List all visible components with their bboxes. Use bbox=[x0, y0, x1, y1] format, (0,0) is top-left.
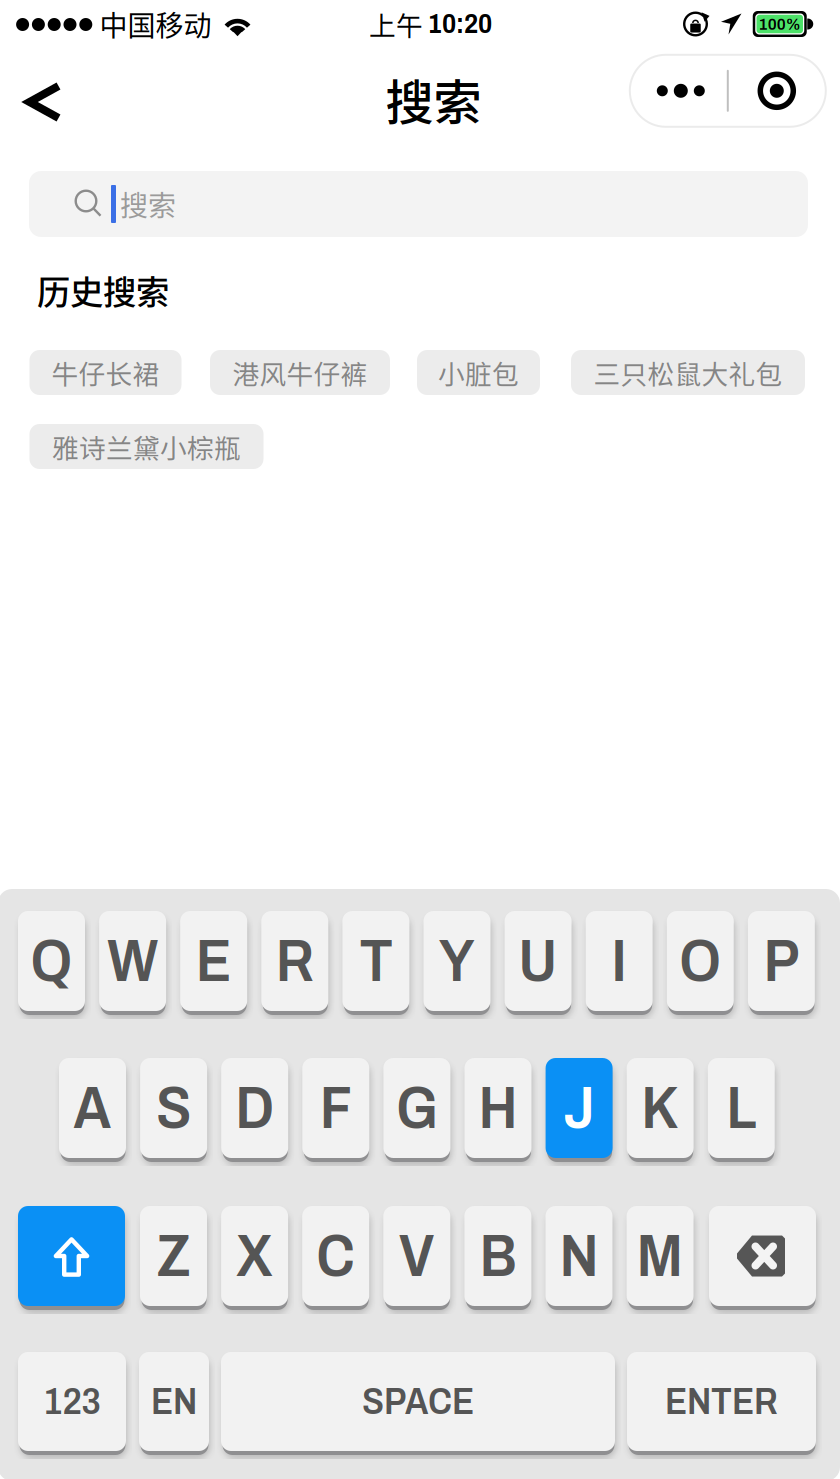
button[interactable]: A bbox=[55, 1052, 130, 1164]
staticText: G bbox=[396, 1075, 438, 1141]
staticText: T bbox=[359, 928, 392, 994]
button[interactable]: 123 bbox=[14, 1346, 130, 1457]
button[interactable]: H bbox=[460, 1052, 535, 1164]
button[interactable]: T bbox=[338, 905, 413, 1017]
button[interactable]: D bbox=[217, 1052, 292, 1164]
staticText: 123 bbox=[43, 1381, 100, 1422]
staticText: L bbox=[726, 1075, 756, 1141]
button[interactable]: 小脏包 bbox=[417, 350, 540, 395]
button[interactable]: 雅诗兰黛小棕瓶 bbox=[29, 424, 263, 469]
staticText: ENTER bbox=[665, 1381, 778, 1422]
staticText: 小脏包 bbox=[438, 353, 519, 392]
staticText: Q bbox=[30, 928, 72, 994]
button[interactable]: S bbox=[136, 1052, 211, 1164]
staticText: 搜索 bbox=[385, 64, 481, 134]
staticText: 牛仔长裙 bbox=[51, 353, 159, 392]
button[interactable]: P bbox=[744, 905, 819, 1017]
button[interactable]: F bbox=[298, 1052, 373, 1164]
button[interactable]: 搜索 bbox=[29, 171, 808, 237]
button[interactable]: SPACE bbox=[217, 1346, 619, 1457]
button[interactable]: U bbox=[501, 905, 576, 1017]
staticText: 三只松鼠大礼包 bbox=[593, 353, 782, 392]
button[interactable]: Z bbox=[136, 1200, 211, 1312]
staticText: C bbox=[316, 1223, 355, 1289]
staticText: S bbox=[156, 1075, 191, 1141]
button[interactable]: M bbox=[623, 1200, 698, 1312]
button[interactable]: 牛仔长裙 bbox=[29, 350, 181, 395]
staticText: 上午 bbox=[369, 5, 423, 43]
button[interactable]: 港风牛仔裤 bbox=[210, 350, 390, 395]
button[interactable]: Y bbox=[419, 905, 494, 1017]
staticText: R bbox=[276, 928, 314, 994]
staticText: A bbox=[73, 1075, 111, 1141]
staticText: 搜索 bbox=[120, 184, 176, 224]
staticText: 10:20 bbox=[428, 9, 492, 38]
staticText: M bbox=[637, 1223, 684, 1289]
staticText: D bbox=[235, 1075, 274, 1141]
button[interactable]: B bbox=[460, 1200, 535, 1312]
button[interactable]: Back bbox=[7, 64, 80, 140]
button[interactable]: Shift bbox=[14, 1200, 129, 1312]
staticText: 历史搜索 bbox=[37, 266, 169, 314]
button[interactable]: Close mini program bbox=[729, 55, 825, 127]
button[interactable]: 三只松鼠大礼包 bbox=[571, 350, 805, 395]
button[interactable]: C bbox=[298, 1200, 373, 1312]
staticText: V bbox=[399, 1223, 435, 1289]
button[interactable]: E bbox=[176, 905, 251, 1017]
button[interactable]: G bbox=[379, 1052, 454, 1164]
staticText: E bbox=[196, 928, 232, 994]
button[interactable]: I bbox=[582, 905, 657, 1017]
staticText: I bbox=[611, 928, 627, 994]
staticText: 中国移动 bbox=[99, 4, 211, 44]
staticText: Z bbox=[156, 1223, 190, 1289]
staticText: N bbox=[559, 1223, 598, 1289]
staticText: P bbox=[763, 928, 799, 994]
button[interactable]: More options bbox=[632, 55, 730, 127]
button[interactable]: Q bbox=[14, 905, 89, 1017]
button[interactable]: V bbox=[379, 1200, 454, 1312]
staticText: 雅诗兰黛小棕瓶 bbox=[52, 427, 241, 466]
staticText: B bbox=[479, 1223, 516, 1289]
button[interactable]: J bbox=[542, 1052, 617, 1164]
staticText: F bbox=[320, 1075, 352, 1141]
staticText: 港风牛仔裤 bbox=[232, 353, 367, 392]
button[interactable]: K bbox=[623, 1052, 698, 1164]
button[interactable]: X bbox=[217, 1200, 292, 1312]
button[interactable]: N bbox=[541, 1200, 616, 1312]
staticText: K bbox=[641, 1075, 679, 1141]
staticText: EN bbox=[151, 1381, 197, 1422]
button[interactable]: O bbox=[663, 905, 738, 1017]
button[interactable]: W bbox=[95, 905, 170, 1017]
button[interactable]: L bbox=[704, 1052, 779, 1164]
staticText: SPACE bbox=[362, 1381, 474, 1422]
button[interactable]: ENTER bbox=[623, 1346, 820, 1457]
staticText: X bbox=[236, 1223, 273, 1289]
staticText: U bbox=[519, 928, 558, 994]
button[interactable]: Delete bbox=[705, 1200, 820, 1312]
staticText: J bbox=[564, 1075, 595, 1141]
button[interactable]: R bbox=[257, 905, 332, 1017]
staticText: 100% bbox=[759, 15, 801, 33]
button[interactable]: EN bbox=[135, 1346, 213, 1457]
staticText: H bbox=[478, 1075, 517, 1141]
staticText: O bbox=[679, 928, 721, 994]
staticText: Y bbox=[438, 928, 475, 994]
staticText: W bbox=[107, 928, 158, 994]
